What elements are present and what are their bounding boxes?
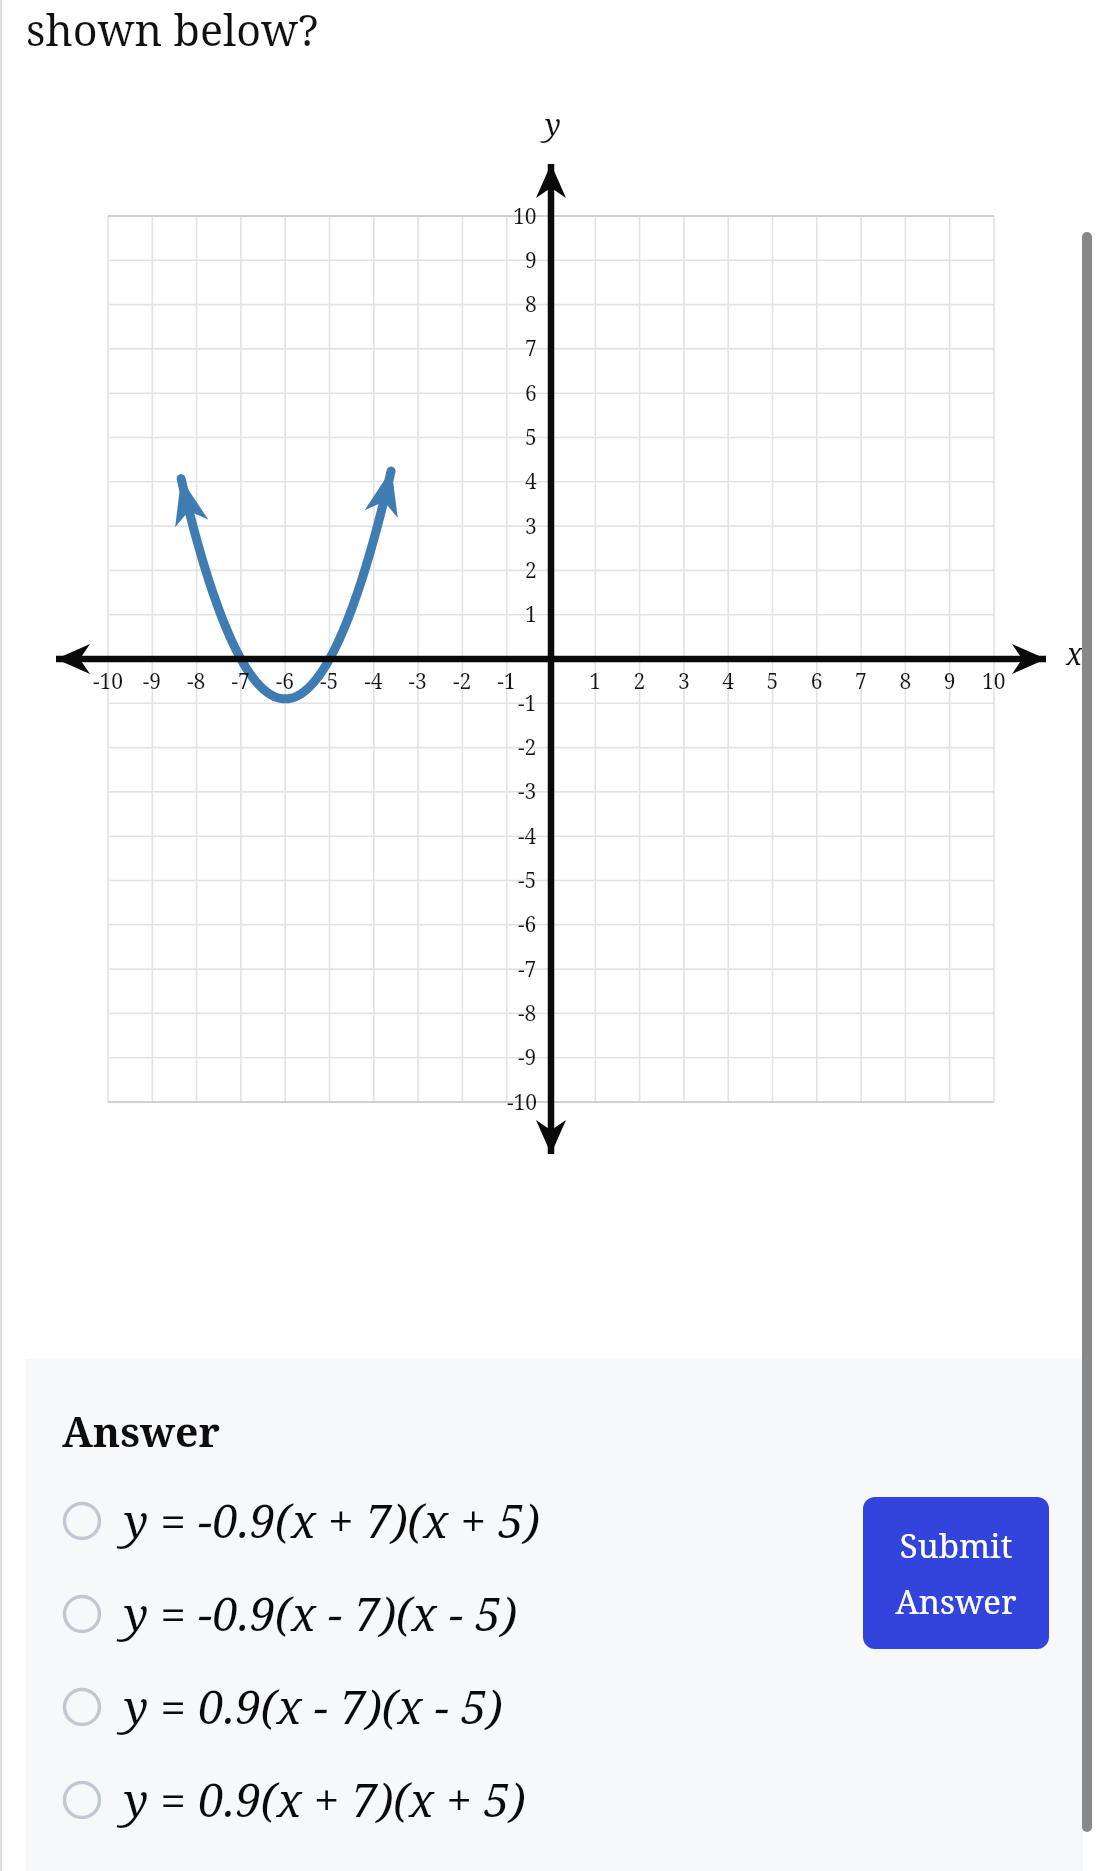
staticText: y = −0.9(x − 7)(x − 5)	[124, 1582, 517, 1645]
staticText: Answer	[62, 1403, 220, 1459]
button[interactable]: y = −0.9(x − 7)(x − 5)	[62, 1582, 863, 1645]
staticText: shown below?	[26, 0, 319, 59]
staticText: y = 0.9(x + 7)(x + 5)	[124, 1768, 526, 1831]
staticText: y = −0.9(x + 7)(x + 5)	[124, 1489, 540, 1552]
button[interactable]: Submit Answer	[863, 1497, 1049, 1649]
staticText: y = 0.9(x − 7)(x − 5)	[124, 1675, 503, 1738]
staticText: Submit Answer	[895, 1523, 1017, 1624]
button[interactable]: y = 0.9(x − 7)(x − 5)	[62, 1675, 863, 1738]
button[interactable]: y = 0.9(x + 7)(x + 5)	[62, 1768, 863, 1831]
button[interactable]: y = −0.9(x + 7)(x + 5)	[62, 1489, 863, 1552]
